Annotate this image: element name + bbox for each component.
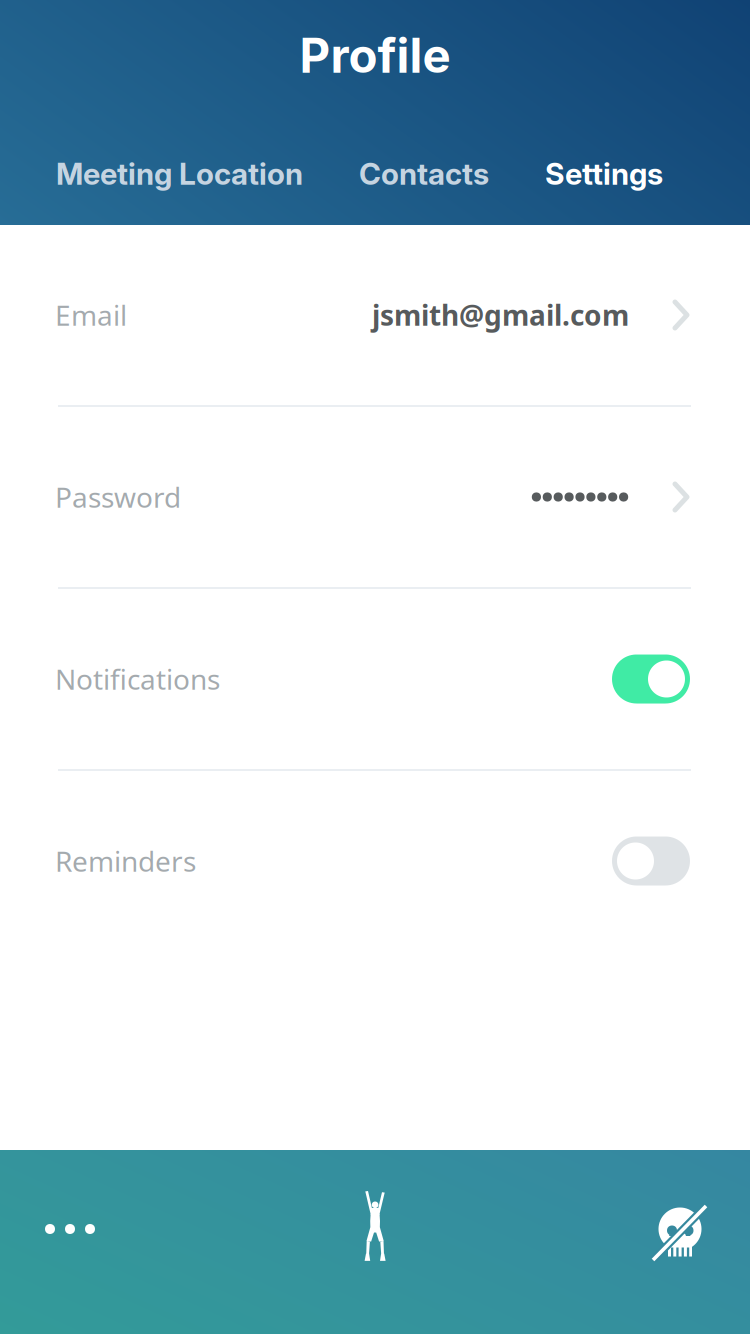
button[interactable]: Email: [0, 225, 750, 405]
staticText: Notifications: [55, 660, 220, 698]
button[interactable]: Notifications: [0, 589, 750, 769]
staticText: Contacts: [359, 156, 489, 192]
button[interactable]: More options: [0, 1189, 140, 1334]
button[interactable]: Password: [0, 407, 750, 587]
staticText: jsmith@gmail.com: [372, 296, 629, 334]
button[interactable]: Workouts: [305, 1186, 445, 1334]
button[interactable]: Contacts: [359, 156, 489, 192]
staticText: Email: [55, 296, 127, 334]
staticText: Reminders: [55, 842, 196, 880]
staticText: Password: [55, 478, 181, 516]
button[interactable]: Injuries: [610, 1192, 750, 1334]
staticText: Meeting Location: [56, 156, 303, 192]
button[interactable]: Meeting Location: [56, 156, 304, 192]
staticText: Profile: [299, 27, 450, 84]
button[interactable]: Settings: [545, 156, 671, 192]
staticText: Settings: [545, 156, 663, 192]
button[interactable]: Reminders: [0, 771, 750, 951]
